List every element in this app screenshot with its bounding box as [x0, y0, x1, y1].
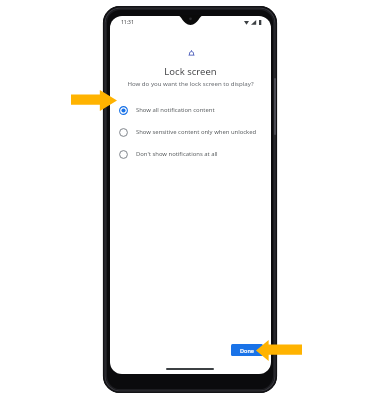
- button[interactable]: Don't show notifications at all: [110, 143, 271, 165]
- staticText: 11:31: [121, 19, 134, 26]
- staticText: How do you want the lock screen to displ…: [110, 79, 271, 87]
- staticText: Show sensitive content only when unlocke…: [136, 128, 257, 136]
- button[interactable]: Done: [231, 344, 263, 356]
- staticText: Lock screen: [110, 65, 271, 78]
- staticText: Don't show notifications at all: [136, 150, 218, 158]
- button[interactable]: Show all notification content: [110, 99, 271, 121]
- staticText: Show all notification content: [136, 106, 215, 114]
- button[interactable]: Show sensitive content only when unlocke…: [110, 121, 271, 143]
- staticText: Done: [240, 347, 254, 354]
- other: Notifications: [189, 50, 194, 56]
